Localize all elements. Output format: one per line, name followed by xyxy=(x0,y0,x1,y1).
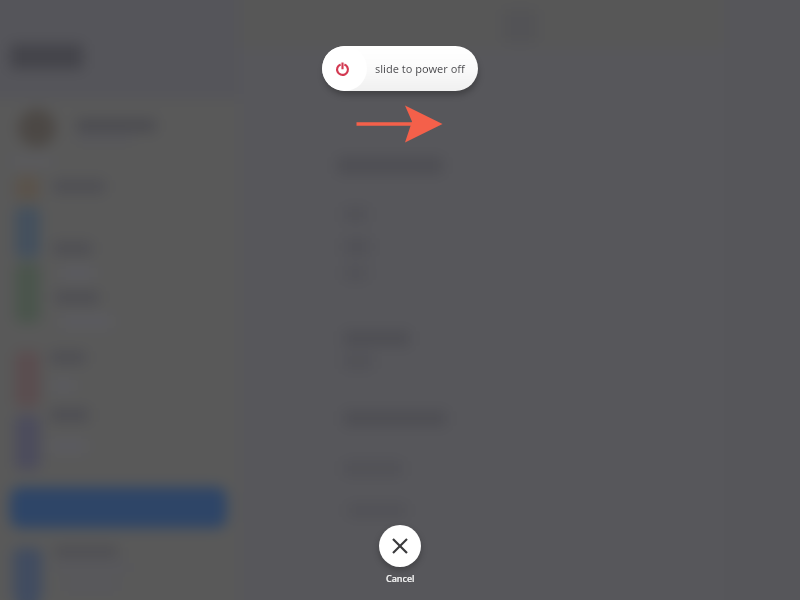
button[interactable]: slide to power off xyxy=(322,46,478,91)
button[interactable]: Cancel xyxy=(379,525,421,567)
staticText: Cancel xyxy=(386,572,415,584)
staticText: slide to power off xyxy=(375,61,465,76)
